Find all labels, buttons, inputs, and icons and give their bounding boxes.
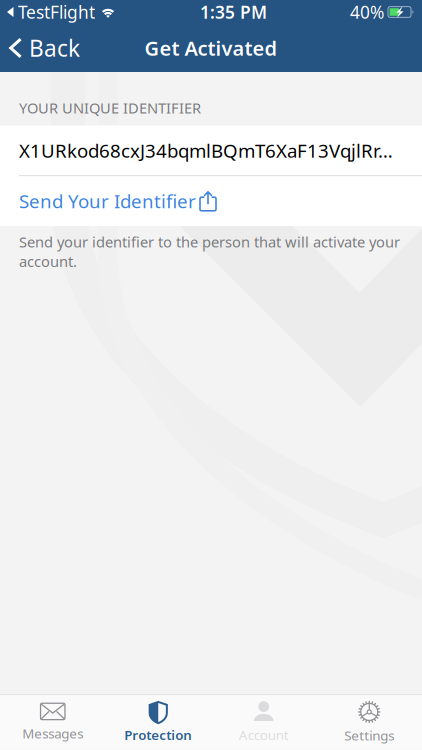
staticText: YOUR UNIQUE IDENTIFIER	[19, 98, 201, 117]
staticText: Get Activated	[144, 35, 277, 61]
staticText: 40%	[350, 0, 384, 23]
button[interactable]: Account	[211, 698, 316, 747]
staticText: Account	[239, 726, 289, 744]
staticText: Send Your Identifier	[19, 189, 196, 213]
button[interactable]: Send Your Identifier	[0, 176, 422, 226]
button[interactable]: Settings	[316, 698, 422, 747]
staticText: Back	[29, 33, 80, 63]
button[interactable]: Protection	[105, 698, 211, 747]
button[interactable]: Back	[0, 24, 92, 72]
staticText: Settings	[344, 726, 394, 744]
staticText: Send your identifier to the person that …	[19, 232, 400, 271]
staticText: Protection	[124, 726, 192, 744]
staticText: Messages	[22, 724, 83, 742]
button[interactable]: Messages	[0, 698, 105, 747]
staticText: X1URkod68cxJ34bqmlBQmT6XaF13VqjlRr…	[19, 138, 393, 163]
staticText: TestFlight	[18, 0, 95, 23]
staticText: 1:35 PM	[200, 0, 267, 23]
